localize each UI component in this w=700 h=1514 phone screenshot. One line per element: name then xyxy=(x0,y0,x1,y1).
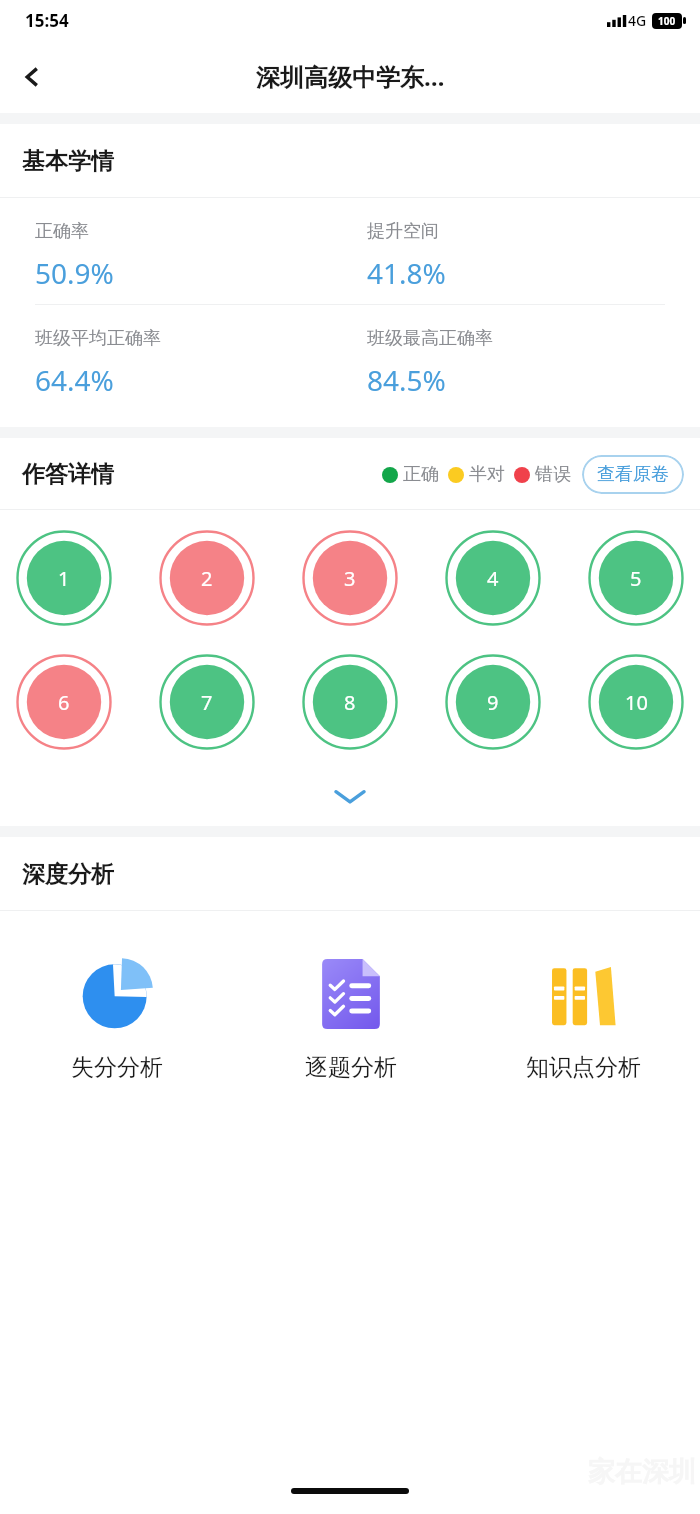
button[interactable]: 8 xyxy=(302,654,398,750)
button[interactable]: Back xyxy=(6,51,58,103)
staticText: 8 xyxy=(344,689,356,716)
staticText: 15:54 xyxy=(25,9,69,32)
staticText: 半对 xyxy=(469,463,505,486)
staticText: 作答详情 xyxy=(22,460,114,489)
button[interactable]: 10 xyxy=(588,654,684,750)
staticText: 4G xyxy=(628,11,647,30)
staticText: 5 xyxy=(630,565,642,592)
button[interactable]: 2 xyxy=(159,530,255,626)
button[interactable]: 查看原卷 xyxy=(582,455,684,494)
button[interactable]: 知识点分析 xyxy=(467,951,700,1086)
button[interactable]: 班级平均正确率 xyxy=(35,327,367,399)
staticText: 家在深圳 xyxy=(588,1455,696,1489)
button[interactable]: 正确 xyxy=(382,463,439,486)
button[interactable]: 提升空间 xyxy=(367,220,700,292)
staticText: 2 xyxy=(201,565,213,592)
staticText: 查看原卷 xyxy=(597,463,669,486)
staticText: 知识点分析 xyxy=(526,1053,641,1082)
staticText: 失分分析 xyxy=(71,1053,163,1082)
button[interactable]: 4 xyxy=(445,530,541,626)
button[interactable]: 9 xyxy=(445,654,541,750)
button[interactable]: 6 xyxy=(16,654,112,750)
staticText: 班级最高正确率 xyxy=(367,327,493,350)
button[interactable]: 正确率 xyxy=(35,220,367,292)
staticText: 班级平均正确率 xyxy=(35,327,161,350)
staticText: 3 xyxy=(344,565,356,592)
staticText: 41.8% xyxy=(367,254,446,292)
staticText: 深圳高级中学东… xyxy=(256,60,445,93)
staticText: 逐题分析 xyxy=(305,1053,397,1082)
staticText: 9 xyxy=(487,689,499,716)
staticText: 基本学情 xyxy=(22,147,114,176)
button[interactable]: 失分分析 xyxy=(0,951,234,1086)
staticText: 深度分析 xyxy=(22,860,114,889)
button[interactable]: 班级最高正确率 xyxy=(367,327,700,399)
staticText: 6 xyxy=(58,689,70,716)
staticText: 84.5% xyxy=(367,361,446,399)
staticText: 10 xyxy=(625,689,648,716)
button[interactable]: 5 xyxy=(588,530,684,626)
staticText: 100 xyxy=(658,14,676,28)
staticText: 正确 xyxy=(403,463,439,486)
staticText: 错误 xyxy=(535,463,571,486)
button[interactable]: 1 xyxy=(16,530,112,626)
staticText: 50.9% xyxy=(35,254,114,292)
staticText: 正确率 xyxy=(35,220,89,243)
staticText: 1 xyxy=(58,565,70,592)
button[interactable]: Expand more xyxy=(0,774,700,818)
button[interactable]: 半对 xyxy=(448,463,505,486)
button[interactable]: 3 xyxy=(302,530,398,626)
button[interactable]: 错误 xyxy=(514,463,571,486)
staticText: 64.4% xyxy=(35,361,114,399)
staticText: 4 xyxy=(487,565,499,592)
button[interactable]: 7 xyxy=(159,654,255,750)
staticText: 提升空间 xyxy=(367,220,439,243)
button[interactable]: 逐题分析 xyxy=(234,951,467,1086)
staticText: 7 xyxy=(201,689,213,716)
